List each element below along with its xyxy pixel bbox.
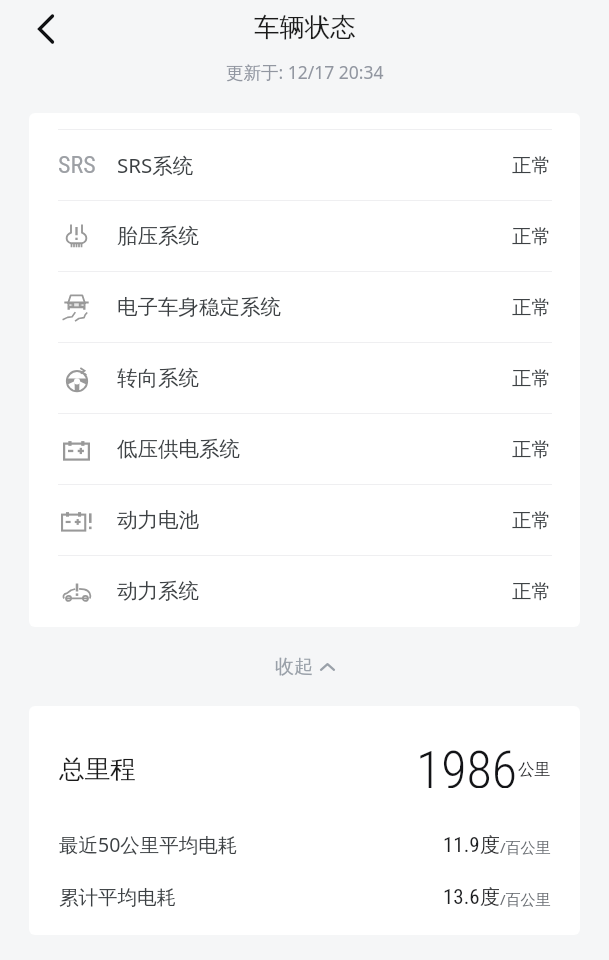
staticText: 更新于: 12/17 20:34 — [226, 60, 384, 84]
staticText: 最近50公里平均电耗 — [59, 831, 238, 858]
staticText: 13.6 — [443, 885, 480, 910]
staticText: 总里程 — [59, 753, 136, 785]
staticText: 正常 — [512, 295, 551, 320]
staticText: 1986 — [416, 740, 518, 788]
button[interactable]: SRS — [29, 130, 580, 200]
button[interactable]: 收起 — [0, 627, 609, 706]
button[interactable]: 转向系统 — [29, 343, 580, 413]
staticText: 动力系统 — [117, 578, 199, 604]
staticText: 动力电池 — [117, 507, 199, 533]
staticText: 度 — [480, 885, 500, 910]
staticText: SRS系统 — [117, 151, 194, 179]
staticText: 正常 — [512, 224, 551, 249]
staticText: 正常 — [512, 366, 551, 391]
staticText: SRS — [58, 151, 95, 179]
staticText: 胎压系统 — [117, 223, 199, 249]
staticText: 转向系统 — [117, 365, 199, 391]
staticText: /百公里 — [500, 889, 551, 909]
staticText: 低压供电系统 — [117, 436, 240, 462]
staticText: 车辆状态 — [254, 11, 356, 43]
button[interactable]: 动力电池 — [29, 485, 580, 555]
staticText: 正常 — [512, 579, 551, 604]
button[interactable]: 动力系统 — [29, 556, 580, 626]
button[interactable]: Back — [17, 5, 65, 53]
staticText: 收起 — [275, 655, 313, 679]
staticText: 度 — [480, 833, 500, 858]
staticText: /百公里 — [500, 837, 551, 857]
staticText: 累计平均电耗 — [59, 885, 176, 910]
staticText: 正常 — [512, 437, 551, 462]
button[interactable]: 电子车身稳定系统 — [29, 272, 580, 342]
staticText: 正常 — [512, 508, 551, 533]
staticText: 公里 — [518, 759, 551, 780]
button[interactable]: 胎压系统 — [29, 201, 580, 271]
staticText: 11.9 — [443, 833, 480, 858]
button[interactable]: 低压供电系统 — [29, 414, 580, 484]
staticText: 电子车身稳定系统 — [117, 294, 281, 320]
staticText: 正常 — [512, 153, 551, 178]
